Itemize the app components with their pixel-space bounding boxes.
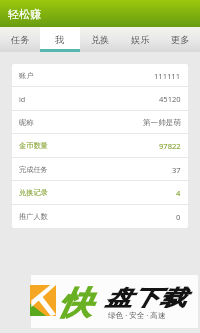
staticText: 任务 [11, 34, 30, 46]
button[interactable]: 兑换 [80, 27, 120, 52]
staticText: 4 [176, 188, 181, 198]
staticText: 金币数量 [19, 141, 48, 150]
staticText: 更多 [171, 34, 190, 46]
button[interactable]: 账户 [12, 64, 188, 87]
staticText: 我 [55, 34, 65, 46]
staticText: 兑换 [91, 34, 110, 46]
staticText: 111111 [154, 71, 181, 81]
staticText: 45120 [159, 94, 181, 104]
button[interactable]: 推广人数 [12, 205, 188, 228]
staticText: 轻松赚 [8, 7, 41, 21]
staticText: 完成任务 [19, 165, 48, 174]
staticText: 盘下载 [105, 285, 186, 311]
button[interactable]: 金币数量 [12, 134, 188, 157]
other: Kuaipan logo [30, 285, 56, 316]
staticText: 娱乐 [131, 34, 150, 46]
staticText: 昵称 [19, 118, 34, 127]
staticText: 绿色 · 安全 · 高速 [108, 310, 166, 320]
staticText: 账户 [19, 71, 34, 80]
button[interactable]: 娱乐 [120, 27, 160, 52]
staticText: 推广人数 [19, 212, 48, 221]
button[interactable]: 兑换记录 [12, 181, 188, 204]
button[interactable]: 任务 [0, 27, 40, 52]
staticText: 兑换记录 [19, 188, 48, 197]
staticText: 快 [58, 283, 91, 323]
button[interactable]: 完成任务 [12, 158, 188, 181]
staticText: 97822 [159, 141, 181, 151]
button[interactable]: 昵称 [12, 111, 188, 134]
staticText: id [19, 94, 26, 104]
button[interactable]: id [12, 87, 188, 110]
button[interactable]: 我 [40, 27, 80, 52]
button[interactable]: 更多 [160, 27, 200, 52]
staticText: 37 [172, 165, 181, 175]
staticText: 0 [176, 212, 181, 222]
staticText: 第一帅是萌 [143, 118, 181, 128]
